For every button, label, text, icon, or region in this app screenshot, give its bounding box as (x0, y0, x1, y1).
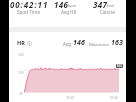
staticText: Avg HR (61, 9, 77, 15)
button[interactable]: 00:42:11 (0, 0, 59, 27)
staticText: 163 (111, 38, 124, 48)
button[interactable]: Info about heart rate (26, 40, 32, 46)
staticText: Sport Time (17, 9, 41, 15)
button[interactable]: HR (17, 39, 32, 46)
staticText: 347 (93, 0, 108, 10)
staticText: 146 (54, 0, 69, 10)
staticText: 146 (73, 38, 86, 48)
staticText: 100 (18, 71, 24, 75)
staticText: 163 (117, 64, 122, 68)
button[interactable]: 163 (117, 64, 122, 68)
staticText: Calorie (100, 9, 115, 15)
staticText: 200 (18, 53, 24, 57)
staticText: bpm (68, 3, 77, 8)
staticText: 00:42:11 (10, 0, 49, 10)
staticText: 00:20 (66, 96, 75, 100)
staticText: HR (17, 39, 25, 46)
staticText: Maximum (89, 41, 110, 47)
staticText: 40 (19, 92, 23, 96)
staticText: Avg (63, 41, 71, 47)
button[interactable]: 146 (36, 0, 96, 27)
button[interactable]: 347 (74, 0, 134, 27)
staticText: kcal (107, 3, 114, 8)
staticText: 00:40 (110, 96, 119, 100)
